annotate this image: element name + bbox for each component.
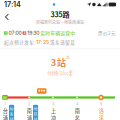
staticText: 浦 <box>27 114 32 120</box>
staticText: 3 <box>52 102 54 106</box>
staticText: 07:00 <box>8 30 23 36</box>
staticText: 冲 <box>51 114 56 120</box>
staticText: 19:30 <box>26 30 40 36</box>
staticText: 站 <box>33 116 37 120</box>
staticText: 南 <box>27 107 32 114</box>
staticText: 上 <box>51 107 56 114</box>
button[interactable]: Back <box>0 10 13 24</box>
staticText: 洛 <box>99 107 104 114</box>
staticText: 17:25 <box>35 39 50 45</box>
staticText: 南 <box>75 107 80 114</box>
staticText: 等车请留意 <box>50 39 75 46</box>
staticText: 1 <box>5 102 6 106</box>
staticText: 始 <box>9 106 13 111</box>
staticText: 起 <box>3 95 7 100</box>
staticText: 3站 <box>51 55 66 69</box>
staticText: 发 <box>9 111 13 116</box>
staticText: 站 <box>9 116 13 120</box>
staticText: 4 <box>76 102 78 106</box>
button[interactable]: 1 <box>3 102 14 120</box>
staticText: 票价2元 <box>98 30 116 36</box>
staticText: 铁 <box>33 111 37 116</box>
staticText: 后 <box>66 55 69 60</box>
staticText: 祈福新村总站－地铁南浦站 <box>36 19 84 25</box>
staticText: 首 <box>4 31 7 35</box>
staticText: 6分钟/2.5公里 <box>47 70 72 76</box>
button[interactable]: 5 <box>99 102 104 120</box>
button[interactable]: 4 <box>75 102 80 120</box>
staticText: 台 <box>3 107 8 114</box>
staticText: 实时车辆运营中 <box>40 29 75 36</box>
staticText: 地 <box>33 106 37 111</box>
staticText: 名 <box>75 114 80 120</box>
staticText: 起点预计发车: <box>4 39 35 46</box>
button[interactable]: 3 <box>51 102 56 120</box>
staticText: 溪 <box>99 114 104 120</box>
staticText: 末 <box>23 31 26 35</box>
staticText: 5 <box>100 102 102 106</box>
button[interactable]: 2 <box>27 102 38 120</box>
staticText: 涌 <box>3 114 8 120</box>
staticText: 2 <box>28 102 30 106</box>
staticText: 335路 <box>50 9 69 19</box>
staticText: 17:14 <box>4 0 21 9</box>
